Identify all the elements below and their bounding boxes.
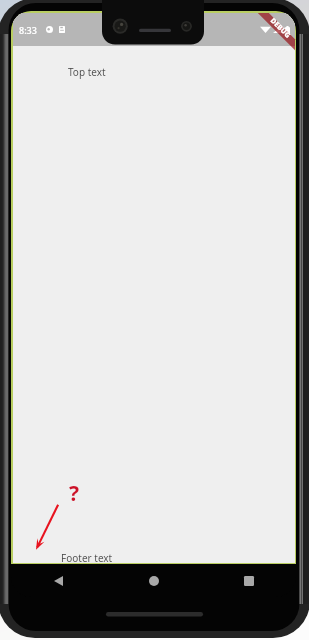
staticText: ?: [69, 479, 80, 508]
staticText: 8:33: [19, 24, 37, 36]
button[interactable]: Home: [106, 564, 201, 597]
staticText: DEBUG: [268, 16, 293, 41]
button[interactable]: Recent apps: [201, 564, 296, 597]
staticText: Footer text: [61, 551, 113, 565]
button[interactable]: Back: [11, 564, 106, 597]
staticText: Top text: [68, 65, 106, 79]
